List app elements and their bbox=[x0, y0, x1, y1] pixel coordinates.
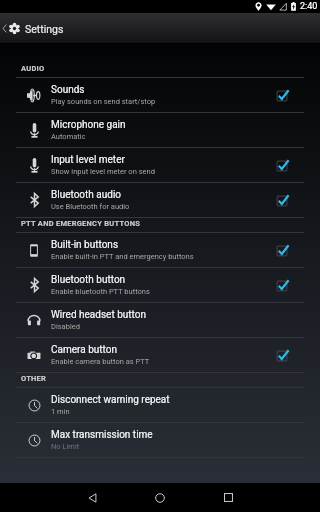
button[interactable]: Input level meter bbox=[0, 148, 320, 182]
staticText: 1 min bbox=[51, 407, 70, 416]
button[interactable]: Bluetooth button bbox=[0, 268, 320, 302]
button[interactable]: Back bbox=[70, 483, 114, 512]
staticText: Enable built-in PTT and emergency button… bbox=[51, 252, 194, 261]
staticText: Built-in buttons bbox=[51, 239, 119, 251]
staticText: Sounds bbox=[51, 84, 85, 96]
button[interactable]: Camera button checkbox bbox=[270, 338, 296, 372]
button[interactable]: Sounds checkbox bbox=[270, 78, 296, 112]
staticText: Input level meter bbox=[51, 154, 125, 166]
button[interactable]: Built-in buttons bbox=[0, 233, 320, 267]
staticText: 2:40 bbox=[300, 1, 318, 12]
button[interactable]: Bluetooth button checkbox bbox=[270, 268, 296, 302]
staticText: Disconnect warning repeat bbox=[51, 394, 170, 406]
staticText: Play sounds on send start/stop bbox=[51, 97, 156, 106]
button[interactable]: Max transmission time bbox=[0, 423, 320, 457]
button[interactable]: Recent apps bbox=[206, 483, 250, 512]
button[interactable]: Wired headset button bbox=[0, 303, 320, 337]
staticText: Use Bluetooth for audio bbox=[51, 202, 130, 211]
button[interactable]: Sounds bbox=[0, 78, 320, 112]
staticText: Wired headset button bbox=[51, 309, 146, 321]
button[interactable]: Built-in buttons checkbox bbox=[270, 233, 296, 267]
button[interactable]: Bluetooth audio bbox=[0, 183, 320, 217]
button[interactable]: Bluetooth audio checkbox bbox=[270, 183, 296, 217]
button[interactable]: Microphone gain bbox=[0, 113, 320, 147]
staticText: Microphone gain bbox=[51, 119, 126, 131]
staticText: AUDIO bbox=[21, 64, 45, 73]
button[interactable]: Input level meter checkbox bbox=[270, 148, 296, 182]
button[interactable]: Camera button bbox=[0, 338, 320, 372]
staticText: Disabled bbox=[51, 322, 80, 331]
staticText: OTHER bbox=[21, 374, 47, 383]
staticText: No Limit bbox=[51, 442, 80, 451]
button[interactable]: Settings bbox=[0, 13, 320, 44]
staticText: Bluetooth audio bbox=[51, 189, 122, 201]
staticText: Show input level meter on send bbox=[51, 167, 155, 176]
button[interactable]: Home bbox=[138, 483, 182, 512]
button[interactable]: Disconnect warning repeat bbox=[0, 388, 320, 422]
staticText: Enable camera button as PTT bbox=[51, 357, 150, 366]
staticText: PTT AND EMERGENCY BUTTONS bbox=[21, 219, 141, 228]
staticText: Bluetooth button bbox=[51, 274, 126, 286]
staticText: Automatic bbox=[51, 132, 86, 141]
staticText: Camera button bbox=[51, 344, 117, 356]
staticText: Enable bluetooth PTT buttons bbox=[51, 287, 150, 296]
staticText: Settings bbox=[25, 23, 64, 35]
staticText: Max transmission time bbox=[51, 429, 153, 441]
